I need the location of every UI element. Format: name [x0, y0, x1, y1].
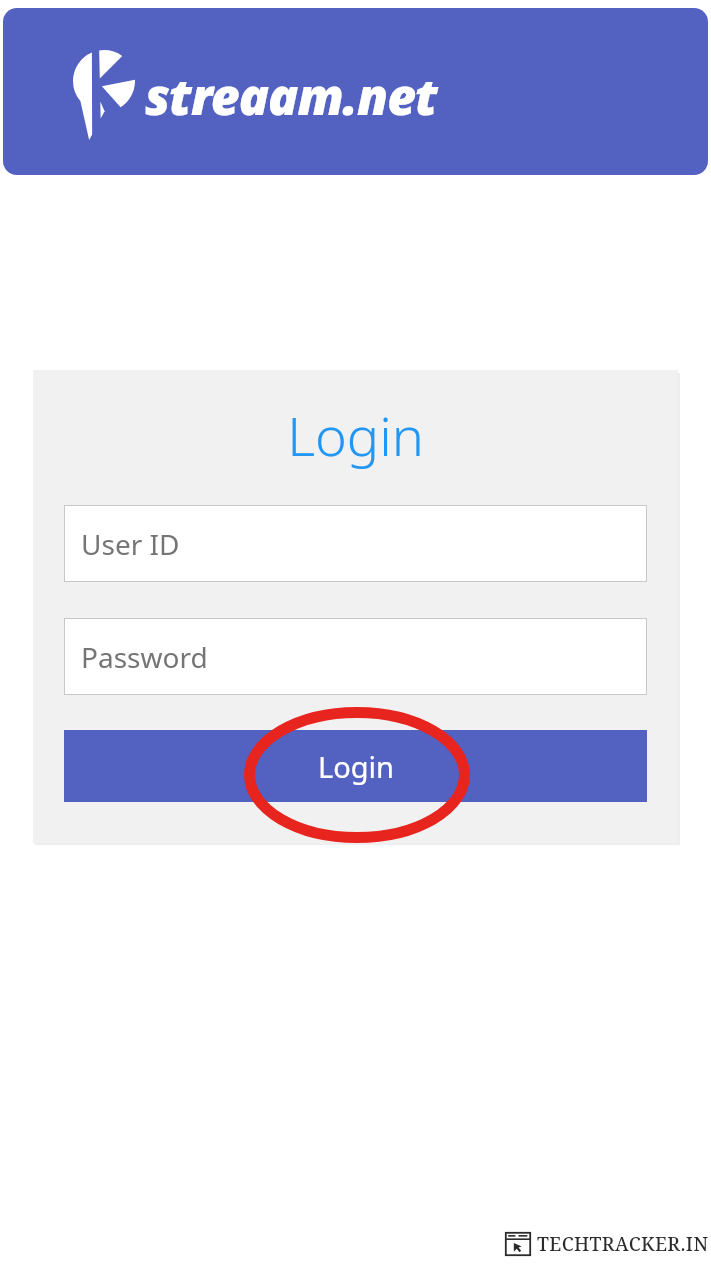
button[interactable]: Login [64, 730, 647, 802]
button[interactable]: streaam.net home [73, 50, 437, 140]
button[interactable]: User ID [64, 505, 647, 582]
staticText: Login [33, 398, 678, 472]
button[interactable]: Password [64, 618, 647, 695]
staticText: streaam.net [145, 62, 437, 130]
staticText: Password [81, 638, 208, 676]
staticText: TECHTRACKER.IN [537, 1231, 709, 1257]
staticText: Login [318, 747, 394, 786]
staticText: User ID [81, 525, 180, 563]
